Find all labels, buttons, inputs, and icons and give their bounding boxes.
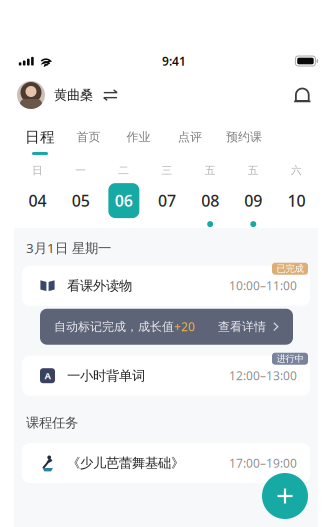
- staticText: 12:00–13:00: [229, 368, 297, 384]
- staticText: 17:00–19:00: [229, 455, 297, 471]
- staticText: 一小时背单词: [67, 367, 145, 384]
- staticText: 五: [205, 164, 216, 177]
- staticText: 一: [75, 164, 86, 177]
- staticText: 09: [244, 190, 262, 211]
- button[interactable]: 五: [232, 160, 275, 235]
- staticText: 作业: [126, 130, 150, 144]
- staticText: 六: [291, 164, 302, 177]
- staticText: 3月1日 星期一: [26, 239, 111, 257]
- staticText: 06: [115, 190, 133, 211]
- staticText: 10:00–11:00: [229, 278, 297, 294]
- staticText: 点评: [178, 130, 202, 144]
- button[interactable]: 《少儿芭蕾舞基础》: [22, 443, 310, 483]
- button[interactable]: 预约课: [216, 122, 272, 153]
- button[interactable]: 看课外读物: [22, 266, 310, 306]
- button[interactable]: Add task: [262, 473, 308, 519]
- button[interactable]: 日程: [16, 120, 64, 155]
- staticText: 进行中: [276, 353, 303, 364]
- staticText: 05: [72, 190, 90, 211]
- staticText: 三: [161, 164, 172, 177]
- staticText: 08: [201, 190, 219, 211]
- staticText: 已完成: [276, 263, 303, 274]
- button[interactable]: 五: [189, 160, 232, 235]
- staticText: 二: [118, 164, 129, 177]
- button[interactable]: 日: [16, 160, 59, 235]
- staticText: 07: [158, 190, 176, 211]
- button[interactable]: A: [22, 356, 310, 396]
- staticText: 日: [32, 164, 43, 177]
- staticText: 看课外读物: [67, 277, 132, 294]
- button[interactable]: 作业: [113, 122, 164, 153]
- staticText: +20: [174, 319, 195, 335]
- staticText: 查看详情: [218, 319, 266, 334]
- staticText: A: [44, 369, 50, 382]
- button[interactable]: 黄曲桑: [17, 76, 118, 114]
- button[interactable]: 六: [275, 160, 318, 235]
- staticText: 日程: [25, 128, 55, 146]
- staticText: 9:41: [162, 53, 186, 69]
- staticText: 自动标记完成，成长值: [54, 319, 174, 334]
- staticText: 黄曲桑: [54, 87, 93, 103]
- staticText: 《少儿芭蕾舞基础》: [67, 455, 184, 471]
- button[interactable]: 三: [145, 160, 188, 235]
- staticText: 10: [287, 190, 305, 211]
- button[interactable]: 点评: [164, 122, 216, 153]
- button[interactable]: Notifications: [289, 82, 316, 107]
- button[interactable]: 一: [59, 160, 102, 235]
- button[interactable]: 二: [102, 160, 145, 235]
- button[interactable]: 自动标记完成，成长值: [40, 309, 293, 345]
- staticText: 预约课: [226, 130, 262, 144]
- staticText: 五: [248, 164, 259, 177]
- button[interactable]: 首页: [64, 122, 113, 153]
- staticText: 04: [29, 190, 47, 211]
- staticText: 首页: [76, 130, 100, 144]
- staticText: 课程任务: [26, 415, 78, 431]
